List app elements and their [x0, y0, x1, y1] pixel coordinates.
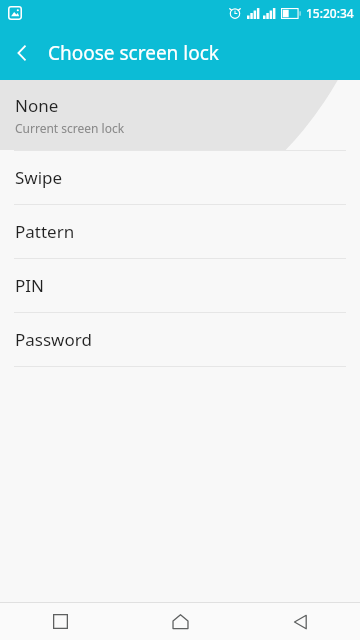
staticText: Password [15, 328, 92, 351]
staticText: Choose screen lock [48, 40, 219, 66]
button[interactable]: Pattern [0, 205, 360, 258]
button[interactable]: Recent apps [0, 603, 120, 640]
button[interactable]: PIN [0, 259, 360, 312]
staticText: Pattern [15, 220, 75, 243]
button[interactable]: Back [0, 31, 44, 75]
staticText: PIN [15, 274, 44, 297]
button[interactable]: Swipe [0, 151, 360, 204]
staticText: None [15, 94, 59, 117]
button[interactable]: Password [0, 313, 360, 366]
button[interactable]: Back [240, 603, 360, 640]
staticText: Current screen lock [15, 120, 125, 136]
button[interactable]: None [0, 80, 360, 150]
staticText: Swipe [15, 166, 63, 189]
staticText: 15:20:34 [306, 5, 354, 21]
button[interactable]: Home [120, 603, 240, 640]
